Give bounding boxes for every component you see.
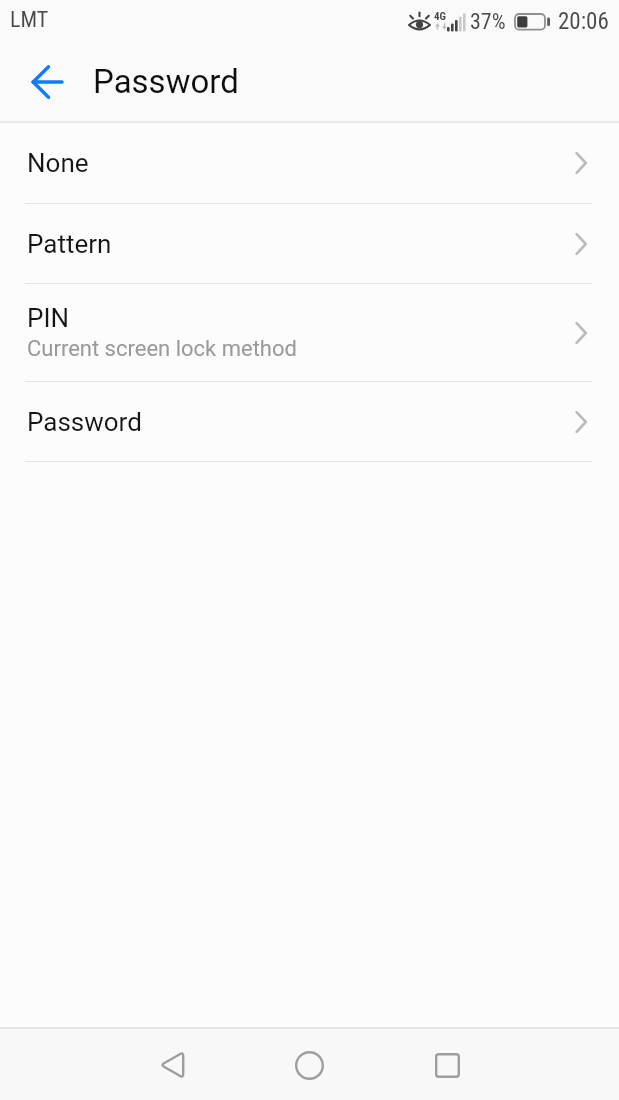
staticText: Current screen lock method [27,336,297,362]
staticText: Password [93,62,239,101]
staticText: Password [27,407,142,437]
button[interactable]: None [0,123,619,203]
staticText: LMT [10,7,49,33]
button[interactable]: PIN [0,284,619,381]
staticText: None [27,148,89,178]
staticText: Pattern [27,229,112,259]
staticText: 37% [470,9,506,35]
button[interactable]: Pattern [0,204,619,283]
button[interactable] [148,1041,196,1089]
staticText: 4G [434,10,447,23]
staticText: PIN [27,303,70,333]
button[interactable] [19,54,75,110]
button[interactable]: Password [0,382,619,461]
button[interactable] [423,1041,471,1089]
staticText: 20:06 [558,8,609,35]
button[interactable] [285,1041,333,1089]
